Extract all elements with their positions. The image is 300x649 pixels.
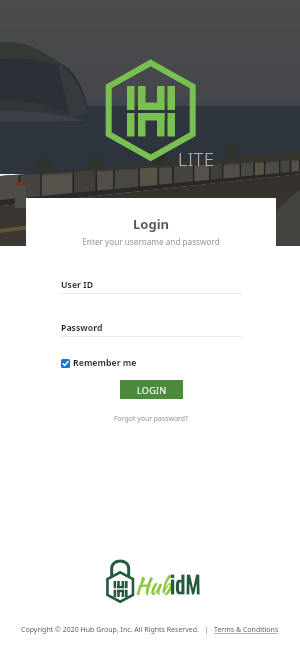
- staticText: LOGIN: [137, 384, 167, 396]
- staticText: idM: [170, 567, 201, 601]
- staticText: User ID: [61, 279, 93, 291]
- staticText: Hub: [135, 570, 171, 602]
- staticText: Login: [26, 215, 276, 233]
- staticText: LITE: [178, 147, 215, 172]
- staticText: Password: [61, 322, 103, 334]
- staticText: Remember me: [73, 357, 137, 369]
- staticText: Enter your username and password: [26, 236, 276, 247]
- button[interactable]: Forgot your password?: [26, 414, 276, 423]
- staticText: |: [199, 625, 214, 635]
- button[interactable]: Remember me: [61, 357, 137, 369]
- button[interactable]: LOGIN: [120, 380, 183, 399]
- button[interactable]: Terms & Conditions: [214, 625, 279, 635]
- staticText: Copyright © 2020 Hub Group, Inc. All Rig…: [21, 625, 199, 635]
